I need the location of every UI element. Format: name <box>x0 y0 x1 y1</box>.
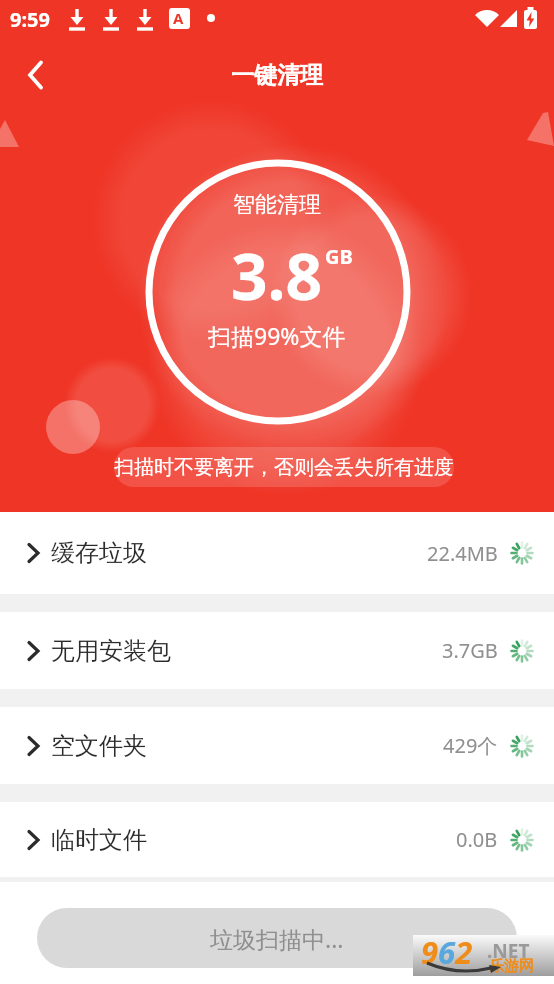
staticText: 962 <box>421 931 473 972</box>
staticText: 临时文件 <box>51 825 147 855</box>
staticText: A <box>173 8 184 28</box>
staticText: GB <box>325 243 353 270</box>
staticText: 3.7GB <box>442 637 498 664</box>
staticText: 9:59 <box>10 6 50 33</box>
staticText: 扫描时不要离开，否则会丢失所有进度 <box>114 455 454 480</box>
staticText: .NET <box>487 938 530 964</box>
staticText: 22.4MB <box>427 540 498 567</box>
button[interactable]: 缓存垃圾 <box>0 512 554 594</box>
button[interactable] <box>12 51 60 99</box>
staticText: 乐游网 <box>489 957 534 976</box>
staticText: 一键清理 <box>231 61 323 90</box>
staticText: 429个 <box>443 732 498 759</box>
staticText: 缓存垃圾 <box>51 538 147 568</box>
button[interactable]: 无用安装包 <box>0 612 554 689</box>
staticText: 空文件夹 <box>51 731 147 761</box>
button[interactable]: 临时文件 <box>0 802 554 877</box>
staticText: 垃圾扫描中... <box>210 923 344 954</box>
staticText: 智能清理 <box>233 191 321 219</box>
staticText: 扫描99%文件 <box>208 320 346 351</box>
staticText: 3.8 <box>231 232 323 319</box>
staticText: 无用安装包 <box>51 636 171 666</box>
button[interactable]: 空文件夹 <box>0 707 554 784</box>
staticText: 0.0B <box>456 826 498 853</box>
button[interactable]: 垃圾扫描中... <box>37 908 517 968</box>
